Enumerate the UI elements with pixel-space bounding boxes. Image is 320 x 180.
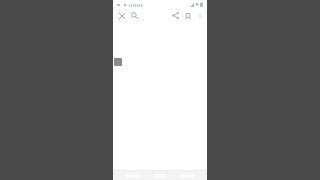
- button[interactable]: Close: [116, 10, 127, 21]
- button[interactable]: Share: [170, 10, 181, 21]
- button[interactable]: Search: [129, 10, 140, 21]
- button[interactable]: More options: [194, 10, 205, 21]
- button[interactable]: Image placeholder: [114, 58, 122, 66]
- button[interactable]: Bookmark: [182, 10, 193, 21]
